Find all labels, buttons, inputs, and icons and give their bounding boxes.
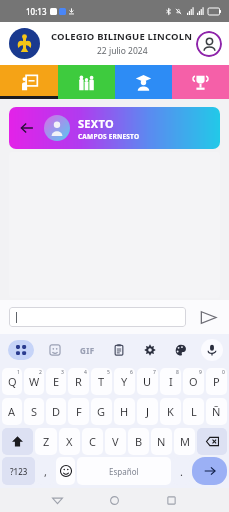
button[interactable]: Ñ (206, 398, 227, 425)
button[interactable]: Recents (159, 488, 183, 512)
button[interactable]: Q (2, 368, 22, 395)
button[interactable]: R (68, 368, 89, 395)
staticText: 22 julio 2024 (97, 45, 148, 57)
staticText: 3 (61, 369, 64, 376)
button[interactable]: Apps (8, 340, 34, 360)
button[interactable]: A (2, 398, 22, 425)
button[interactable]: I (160, 368, 181, 395)
button[interactable]: G (91, 398, 112, 425)
staticText: L (191, 404, 197, 419)
button[interactable]: . (173, 457, 190, 485)
staticText: Q (8, 374, 17, 389)
button[interactable]: V (105, 428, 126, 455)
button[interactable]: Settings (139, 339, 161, 361)
button[interactable]: H (114, 398, 135, 425)
staticText: P (213, 374, 220, 389)
staticText: 9 (199, 369, 202, 376)
staticText: 5 (107, 369, 110, 376)
button[interactable]: P (206, 368, 227, 395)
button[interactable]: T (91, 368, 112, 395)
button[interactable]: Logros (172, 65, 229, 99)
staticText: B (135, 434, 143, 449)
staticText: CAMPOS ERNESTO (78, 132, 140, 141)
button[interactable]: Voice input (201, 339, 223, 361)
button[interactable]: O (183, 368, 204, 395)
button[interactable]: N (151, 428, 172, 455)
staticText: Español (109, 466, 139, 477)
staticText: A (8, 404, 16, 419)
button[interactable]: Shift (2, 428, 33, 455)
staticText: 1 (17, 369, 20, 376)
button[interactable]: Enter (192, 457, 227, 485)
button[interactable]: Back (17, 118, 37, 138)
staticText: X (66, 434, 73, 449)
button[interactable]: B (128, 428, 149, 455)
staticText: O (189, 374, 198, 389)
button[interactable]: C (82, 428, 103, 455)
button[interactable]: U (137, 368, 158, 395)
staticText: COLEGIO BILINGUE LINCOLN (51, 30, 193, 43)
button[interactable]: S (24, 398, 44, 425)
staticText: T (98, 374, 105, 389)
button[interactable]: GIF (75, 340, 99, 360)
staticText: U (143, 374, 152, 389)
staticText: SEXTO (78, 116, 114, 131)
staticText: Z (43, 434, 50, 449)
button[interactable]: Y (114, 368, 135, 395)
button[interactable]: L (183, 398, 204, 425)
staticText: 6 (130, 369, 133, 376)
button[interactable]: , (37, 457, 54, 485)
staticText: J (146, 404, 150, 419)
button[interactable]: Clases (0, 65, 58, 99)
button[interactable]: Back (9, 107, 220, 149)
staticText: D (52, 404, 61, 419)
staticText: 7 (153, 369, 156, 376)
staticText: M (180, 434, 190, 449)
button[interactable]: Backspace (197, 428, 227, 455)
button[interactable]: Back (45, 488, 69, 512)
button[interactable]: Stickers (44, 339, 66, 361)
button[interactable]: D (46, 398, 66, 425)
button[interactable]: M (174, 428, 195, 455)
button[interactable]: Familias (58, 65, 115, 99)
staticText: ?123 (10, 466, 28, 477)
staticText: S (31, 404, 38, 419)
staticText: Ñ (212, 404, 221, 419)
staticText: , (44, 464, 47, 479)
button[interactable]: Home (102, 488, 126, 512)
button[interactable]: E (46, 368, 66, 395)
button[interactable]: W (24, 368, 44, 395)
staticText: V (112, 434, 119, 449)
button[interactable]: K (160, 398, 181, 425)
staticText: 8 (176, 369, 179, 376)
button[interactable]: ?123 (2, 457, 35, 485)
staticText: 2 (39, 369, 42, 376)
button[interactable]: X (59, 428, 80, 455)
button[interactable]: Clipboard (108, 339, 130, 361)
staticText: I (169, 374, 173, 389)
staticText: K (167, 404, 174, 419)
staticText: F (76, 404, 82, 419)
button[interactable]: School logo (9, 28, 40, 59)
staticText: . (180, 464, 183, 479)
staticText: E (53, 374, 60, 389)
staticText: R (75, 374, 82, 389)
staticText: GIF (80, 345, 95, 356)
button[interactable]: F (68, 398, 89, 425)
staticText: H (120, 404, 129, 419)
button[interactable] (9, 307, 186, 327)
button[interactable]: Account (196, 31, 222, 57)
staticText: 0 (222, 369, 225, 376)
button[interactable]: Alumnos (115, 65, 172, 99)
button[interactable]: J (137, 398, 158, 425)
button[interactable]: Español (77, 457, 171, 485)
button[interactable]: Z (35, 428, 57, 455)
staticText: W (29, 374, 40, 389)
staticText: G (97, 404, 106, 419)
staticText: Y (121, 374, 128, 389)
staticText: 10:13 (26, 6, 47, 17)
button[interactable]: Emoji (56, 457, 75, 485)
button[interactable]: Themes (170, 339, 192, 361)
staticText: 4 (84, 369, 87, 376)
button[interactable]: Send (196, 305, 220, 329)
